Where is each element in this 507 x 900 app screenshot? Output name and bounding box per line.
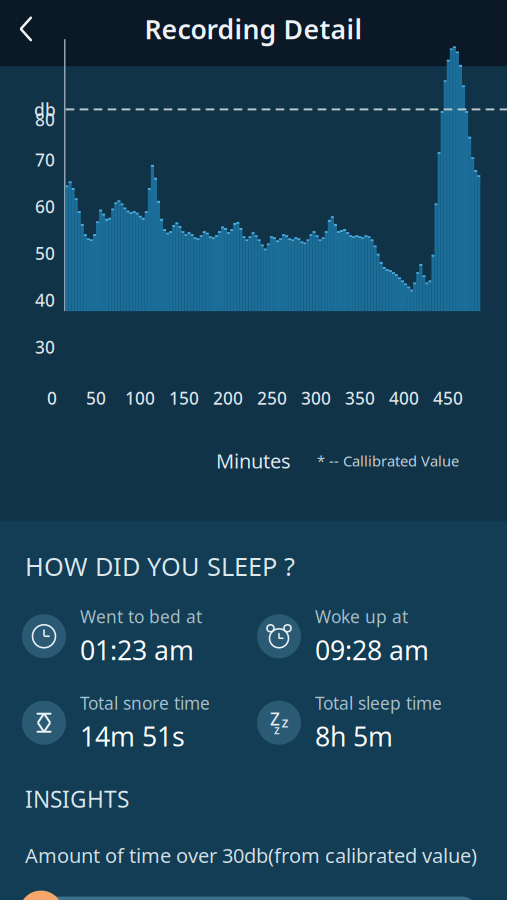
- staticText: 01:23 am: [80, 632, 194, 667]
- button[interactable]: Back: [0, 3, 52, 55]
- staticText: 50: [86, 386, 106, 409]
- staticText: Total snore time: [80, 691, 210, 714]
- staticText: Minutes: [216, 447, 291, 474]
- staticText: Recording Detail: [144, 11, 362, 47]
- staticText: Went to bed at: [80, 605, 202, 628]
- staticText: z: [281, 712, 288, 731]
- staticText: 200: [213, 386, 243, 409]
- staticText: 400: [389, 386, 419, 409]
- staticText: 50: [35, 242, 55, 265]
- staticText: 09:28 am: [315, 632, 429, 667]
- staticText: INSIGHTS: [25, 784, 129, 814]
- staticText: 450: [433, 386, 463, 409]
- staticText: 300: [301, 386, 331, 409]
- staticText: 60: [35, 195, 55, 218]
- staticText: z: [274, 722, 280, 738]
- staticText: 350: [345, 386, 375, 409]
- staticText: Total sleep time: [315, 691, 442, 714]
- staticText: 80: [35, 108, 55, 131]
- staticText: 150: [169, 386, 199, 409]
- staticText: * -- Callibrated Value: [317, 451, 459, 470]
- staticText: 0: [47, 386, 57, 409]
- staticText: 30: [35, 335, 55, 358]
- staticText: HOW DID YOU SLEEP ?: [25, 549, 295, 583]
- staticText: Amount of time over 30db(from calibrated…: [25, 842, 477, 869]
- staticText: 8h 5m: [315, 718, 393, 754]
- staticText: 100: [125, 386, 155, 409]
- staticText: Z: [270, 707, 280, 730]
- staticText: 14m 51s: [80, 718, 185, 754]
- staticText: Woke up at: [315, 605, 408, 628]
- staticText: 40: [35, 289, 55, 312]
- staticText: 250: [257, 386, 287, 409]
- staticText: db: [34, 98, 56, 121]
- staticText: 70: [35, 148, 55, 171]
